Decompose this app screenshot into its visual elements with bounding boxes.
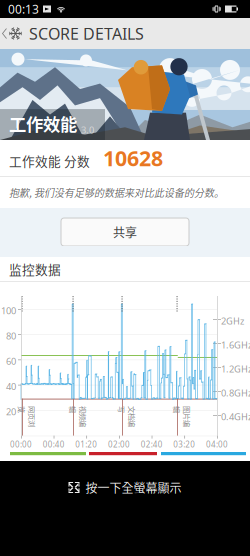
staticText: 03:20: [173, 439, 195, 450]
staticText: 0.8GHz: [221, 387, 250, 399]
staticText: 抱歉, 我们没有足够的数据来对比此设备的分数。: [9, 185, 224, 200]
staticText: 按一下全螢幕顯示: [85, 479, 181, 496]
staticText: 01:20: [75, 439, 97, 450]
button[interactable]: Back: [0, 18, 150, 49]
staticText: 文档编写: [115, 408, 136, 428]
staticText: 00:13: [8, 1, 39, 17]
staticText: 00:00: [10, 439, 32, 450]
staticText: 20: [6, 405, 16, 418]
staticText: 共享: [113, 223, 137, 241]
staticText: 监控数据: [9, 260, 61, 278]
staticText: 视频编辑: [66, 408, 87, 428]
staticText: 80: [6, 330, 16, 342]
staticText: 60: [6, 355, 16, 367]
staticText: 02:40: [141, 439, 163, 450]
staticText: 1.2GHz: [221, 363, 250, 375]
staticText: SCORE DETAILS: [29, 23, 144, 44]
button[interactable]: 按一下全螢幕顯示: [62, 473, 187, 502]
staticText: 40: [6, 380, 16, 393]
staticText: 00:40: [43, 439, 65, 450]
staticText: 0.4GHz: [221, 411, 250, 423]
staticText: 04:00: [206, 439, 228, 450]
staticText: 100: [1, 304, 16, 317]
staticText: 1.6GHz: [221, 339, 250, 351]
button[interactable]: 共享: [61, 218, 189, 246]
staticText: 02:00: [108, 439, 130, 450]
staticText: 图片编辑: [170, 408, 191, 428]
staticText: 2GHz: [221, 315, 244, 327]
staticText: 工作效能: [9, 111, 77, 136]
staticText: 网页浏览: [15, 408, 36, 428]
staticText: 3.0: [81, 124, 94, 136]
staticText: 工作效能 分数: [9, 152, 90, 170]
staticText: 10628: [103, 144, 163, 172]
